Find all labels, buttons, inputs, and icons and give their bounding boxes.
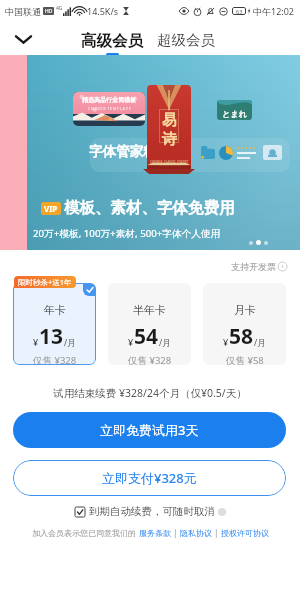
button[interactable]: 月卡 [203, 283, 286, 365]
staticText: 支持开发票 [231, 261, 276, 272]
staticText: 13 [39, 322, 64, 351]
staticText: 仅售 ¥328 [128, 354, 172, 365]
button[interactable]: 授权许可协议 [221, 528, 269, 538]
staticText: 高级会员 [81, 31, 143, 51]
staticText: 仅售 ¥328 [33, 354, 77, 365]
staticText: 立即免费试用3天 [100, 421, 199, 439]
button[interactable]: 高级会员 [81, 31, 143, 56]
staticText: 字体管家粗圆 [89, 143, 170, 160]
staticText: 诗 [162, 130, 177, 149]
staticText: C H O I C E T E M P L A T E [88, 106, 131, 111]
staticText: /月 [159, 337, 171, 349]
staticText: VIP [44, 203, 58, 214]
staticText: CHINESE CLASSIC POETRY [150, 160, 189, 164]
staticText: | [212, 527, 221, 538]
button[interactable]: 服务条款 [139, 528, 171, 538]
staticText: /月 [254, 337, 266, 349]
staticText: 中国联通 [5, 6, 41, 17]
staticText: | [171, 527, 180, 538]
staticText: 到期自动续费，可随时取消 [89, 505, 215, 518]
button[interactable]: 到期自动续费，可随时取消 [73, 503, 228, 520]
staticText: /月 [64, 337, 76, 349]
staticText: とまれ [222, 109, 247, 119]
staticText: 4G [56, 5, 63, 12]
button[interactable]: Collapse [9, 25, 37, 53]
staticText: 立即支付¥328元 [102, 469, 197, 487]
staticText: 超级会员 [157, 31, 215, 49]
staticText: 63 [236, 8, 243, 15]
button[interactable]: 年卡 [13, 283, 96, 365]
staticText: 传 统 诗 词 之 美 [159, 164, 181, 168]
staticText: 58 [229, 322, 254, 351]
staticText: ¥ [128, 336, 134, 348]
staticText: 易 [162, 111, 177, 130]
staticText: 中午12:02 [253, 5, 295, 17]
staticText: ¥ [223, 336, 229, 348]
staticText: 年卡 [44, 303, 66, 317]
staticText: 54 [134, 322, 159, 351]
button[interactable]: 隐私协议 [180, 528, 212, 538]
button[interactable]: 支持开发票 [229, 259, 289, 274]
staticText: 仅售 ¥58 [226, 354, 264, 365]
staticText: 精选高品行业简模板 [82, 96, 136, 104]
staticText: 月卡 [234, 303, 256, 317]
button[interactable]: 立即支付¥328元 [13, 460, 286, 496]
staticText: 半年卡 [133, 303, 166, 317]
staticText: 14.5K/s [87, 5, 119, 17]
button[interactable]: 立即免费试用3天 [13, 412, 286, 448]
staticText: HD [45, 8, 53, 15]
button[interactable]: 半年卡 [108, 283, 191, 365]
staticText: 20万+模板, 100万+素材, 500+字体个人使用 [33, 227, 221, 240]
staticText: 限时秒杀+送1年 [18, 277, 72, 287]
staticText: ¥ [33, 336, 39, 348]
staticText: 模板、素材、字体免费用 [64, 198, 235, 218]
staticText: 试用结束续费 ¥328/24个月（仅¥0.5/天） [0, 386, 300, 400]
staticText: 加入会员表示您已同意我们的 [32, 527, 139, 538]
button[interactable]: 超级会员 [157, 31, 215, 56]
